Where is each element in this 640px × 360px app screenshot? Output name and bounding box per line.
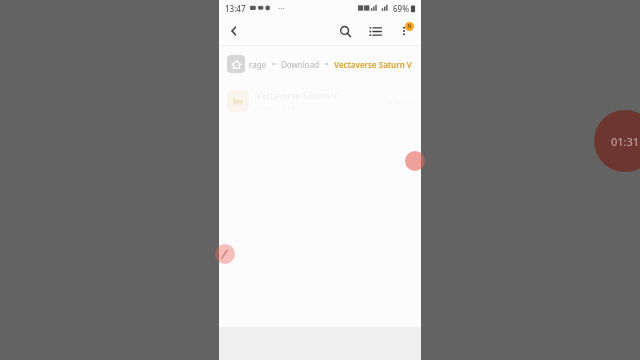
button[interactable]: Back	[219, 16, 249, 45]
staticText: 69%	[393, 3, 409, 14]
button[interactable]: Home	[227, 55, 245, 73]
staticText: Download	[281, 59, 320, 70]
button[interactable]: Vectaverse Saturn V	[334, 59, 412, 70]
staticText: 13:47	[225, 3, 246, 14]
staticText: rage	[249, 59, 267, 70]
staticText: 01:31	[611, 134, 640, 149]
staticText: ···	[278, 3, 285, 14]
staticText: Vectaverse Saturn V	[256, 90, 337, 102]
button[interactable]: Search	[331, 17, 359, 45]
button[interactable]: More options	[390, 17, 418, 45]
button[interactable]: Vectaverse Saturn V	[219, 82, 421, 120]
button[interactable]: View mode	[361, 17, 389, 45]
button[interactable]: rage	[249, 59, 267, 70]
button[interactable]: 01:31	[594, 110, 640, 172]
other: Touch indicator	[405, 151, 425, 171]
other: Touch indicator	[215, 244, 235, 264]
staticText: N	[407, 23, 412, 30]
staticText: Vectaverse Saturn V	[334, 59, 412, 70]
button[interactable]: Download	[281, 59, 320, 70]
